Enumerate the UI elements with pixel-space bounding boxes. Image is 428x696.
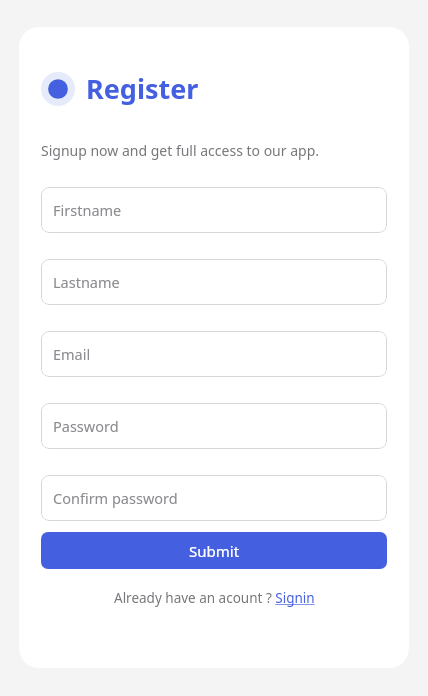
staticText: Signup now and get full access to our ap… xyxy=(41,141,320,160)
staticText: Register xyxy=(86,70,199,107)
button[interactable]: Confirm password xyxy=(41,475,387,521)
staticText: Confirm password xyxy=(53,488,178,508)
button[interactable]: Firstname xyxy=(41,187,387,233)
button[interactable]: Email xyxy=(41,331,387,377)
staticText: Firstname xyxy=(53,200,122,220)
button[interactable]: Lastname xyxy=(41,259,387,305)
button[interactable]: Submit xyxy=(41,532,387,569)
button[interactable]: Password xyxy=(41,403,387,449)
staticText: Submit xyxy=(189,541,240,561)
staticText: Email xyxy=(53,344,91,364)
staticText: Password xyxy=(53,416,119,436)
button[interactable]: Already have an acount ? Signin xyxy=(114,589,315,607)
staticText: Lastname xyxy=(53,272,120,292)
